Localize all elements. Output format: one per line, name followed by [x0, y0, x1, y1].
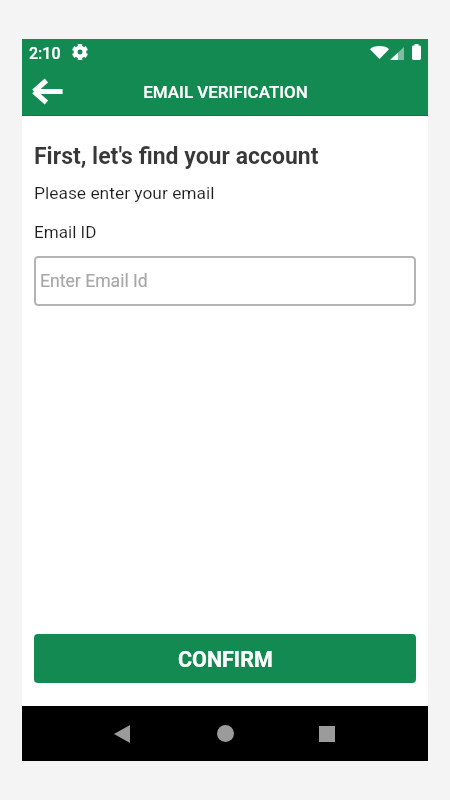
staticText: 2:10 [29, 44, 61, 63]
staticText: First, let's find your account [34, 143, 319, 170]
staticText: Please enter your email [34, 183, 215, 203]
button[interactable]: Enter Email Id [34, 256, 416, 306]
button[interactable]: Recent apps [276, 706, 377, 761]
button[interactable]: Back [25, 69, 69, 113]
staticText: EMAIL VERIFICATION [143, 82, 308, 102]
staticText: Email ID [34, 222, 97, 242]
button[interactable]: Back [74, 706, 175, 761]
button[interactable]: Home [175, 706, 276, 761]
button[interactable]: CONFIRM [34, 634, 416, 683]
staticText: CONFIRM [178, 647, 273, 672]
staticText: Enter Email Id [40, 271, 148, 292]
